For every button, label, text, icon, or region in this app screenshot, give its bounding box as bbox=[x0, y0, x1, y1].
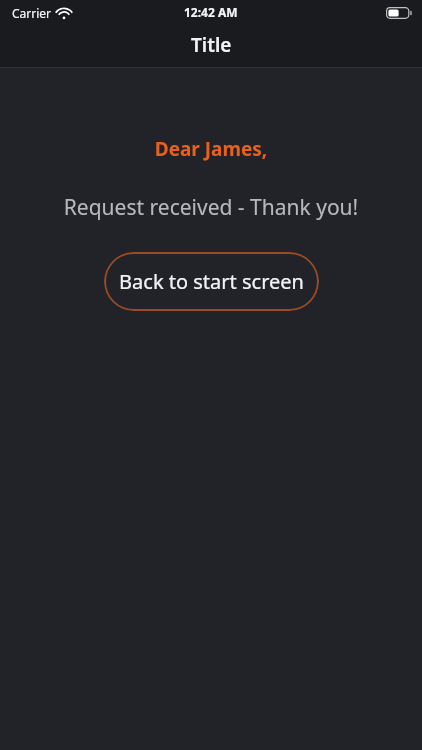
staticText: Request received - Thank you! bbox=[0, 193, 422, 222]
staticText: Carrier bbox=[12, 5, 52, 21]
staticText: Dear James, bbox=[0, 136, 422, 162]
staticText: Title bbox=[191, 32, 232, 58]
staticText: Back to start screen bbox=[119, 268, 304, 295]
button[interactable]: Back to start screen bbox=[104, 252, 319, 311]
staticText: 12:42 AM bbox=[184, 4, 238, 20]
